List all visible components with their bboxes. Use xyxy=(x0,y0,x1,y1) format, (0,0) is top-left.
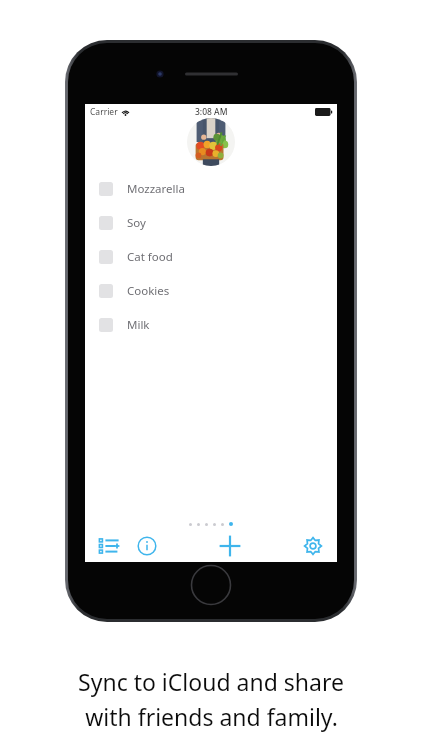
button[interactable]: Settings xyxy=(299,531,327,561)
button[interactable]: Add item xyxy=(213,531,247,561)
staticText: 3:08 AM xyxy=(195,106,228,118)
button[interactable]: Profile photo xyxy=(187,118,235,166)
staticText: Cookies xyxy=(127,283,170,299)
staticText: Mozzarella xyxy=(127,181,185,197)
button[interactable]: Mozzarella xyxy=(85,172,337,206)
staticText: Soy xyxy=(127,215,146,231)
staticText: Sync to iCloud and share xyxy=(78,666,344,697)
button[interactable]: Milk xyxy=(85,308,337,342)
staticText: Milk xyxy=(127,317,150,333)
button[interactable]: Cat food xyxy=(85,240,337,274)
staticText: Cat food xyxy=(127,249,173,265)
button[interactable]: Soy xyxy=(85,206,337,240)
button[interactable]: Cookies xyxy=(85,274,337,308)
button[interactable]: Info xyxy=(133,531,161,561)
button[interactable]: Lists xyxy=(95,531,123,561)
staticText: with friends and family. xyxy=(85,701,338,732)
staticText: Carrier xyxy=(90,106,118,118)
